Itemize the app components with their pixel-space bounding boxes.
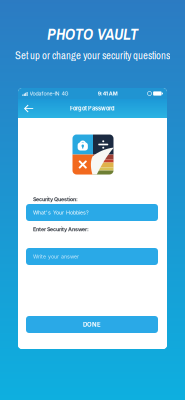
button[interactable]: What's Your Hobbies?: [26, 204, 158, 221]
staticText: DONE: [83, 321, 101, 328]
staticText: Vodafone-IN 4G: [29, 90, 68, 97]
staticText: What's Your Hobbies?: [33, 209, 89, 216]
staticText: Set up or change your security questions: [15, 48, 170, 63]
button[interactable]: DONE: [26, 316, 158, 333]
staticText: 9:41 AM: [98, 90, 118, 97]
button[interactable]: Back: [23, 102, 35, 114]
button[interactable]: Write your answer: [26, 248, 158, 265]
staticText: Security Question:: [33, 196, 78, 202]
staticText: Write your answer: [33, 253, 79, 260]
staticText: Enter Security Answer:: [33, 226, 89, 232]
staticText: Forgot Password: [70, 105, 115, 112]
staticText: PHOTO VAULT: [47, 23, 138, 45]
